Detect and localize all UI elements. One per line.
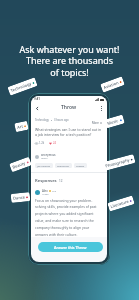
button[interactable]: More options xyxy=(98,105,104,111)
button[interactable]: Beauty xyxy=(9,157,32,172)
staticText: Photography xyxy=(105,157,130,168)
staticText: Growth xyxy=(76,164,85,167)
button[interactable]: Music xyxy=(104,115,125,128)
staticText: Art xyxy=(17,124,23,130)
button[interactable]: Art xyxy=(14,121,29,132)
staticText: 9:41 xyxy=(34,97,40,101)
staticText: Level 3 xyxy=(41,157,48,160)
button[interactable]: Technology xyxy=(7,77,38,96)
staticText: Responses xyxy=(35,178,57,184)
button[interactable]: Back xyxy=(34,105,40,111)
button[interactable]: Photography xyxy=(102,154,136,171)
staticText: Ask whatever you want! There are thousan… xyxy=(19,43,120,79)
button[interactable]: Job hunting xyxy=(35,163,53,168)
staticText: 1.2k xyxy=(39,141,45,145)
staticText: Answer this Throw xyxy=(54,245,87,250)
button[interactable]: Answer this Throw xyxy=(38,242,103,252)
button[interactable]: Special job xyxy=(55,163,72,168)
staticText: Special job xyxy=(57,164,70,167)
staticText: Lv 8 xyxy=(52,190,57,193)
staticText: Music xyxy=(107,118,119,126)
button[interactable]: Aviation xyxy=(100,76,125,93)
staticText: 1h ago xyxy=(42,193,49,196)
staticText: Alex xyxy=(42,189,48,193)
staticText: Throw xyxy=(61,104,77,111)
button[interactable]: Growth xyxy=(74,163,87,168)
staticText: Literature xyxy=(110,199,129,209)
button[interactable]: Dance xyxy=(11,192,30,203)
staticText: 24 xyxy=(53,141,56,145)
staticText: Focus on showcasing your problem-solving… xyxy=(35,198,103,237)
staticText: Technology xyxy=(35,118,49,122)
staticText: More xyxy=(92,121,99,125)
staticText: Technology xyxy=(10,81,32,93)
staticText: 3 hours ago xyxy=(54,118,69,122)
staticText: Job hunting xyxy=(37,164,51,167)
staticText: What strategies can I use to stand out i… xyxy=(35,127,102,137)
staticText: Beauty xyxy=(12,160,27,170)
staticText: Aviation xyxy=(103,80,119,90)
button[interactable]: More xyxy=(90,120,104,126)
button[interactable]: Literature xyxy=(107,195,135,212)
staticText: anonymous xyxy=(41,153,56,157)
staticText: 12 xyxy=(59,179,63,183)
staticText: Dance xyxy=(13,194,25,201)
